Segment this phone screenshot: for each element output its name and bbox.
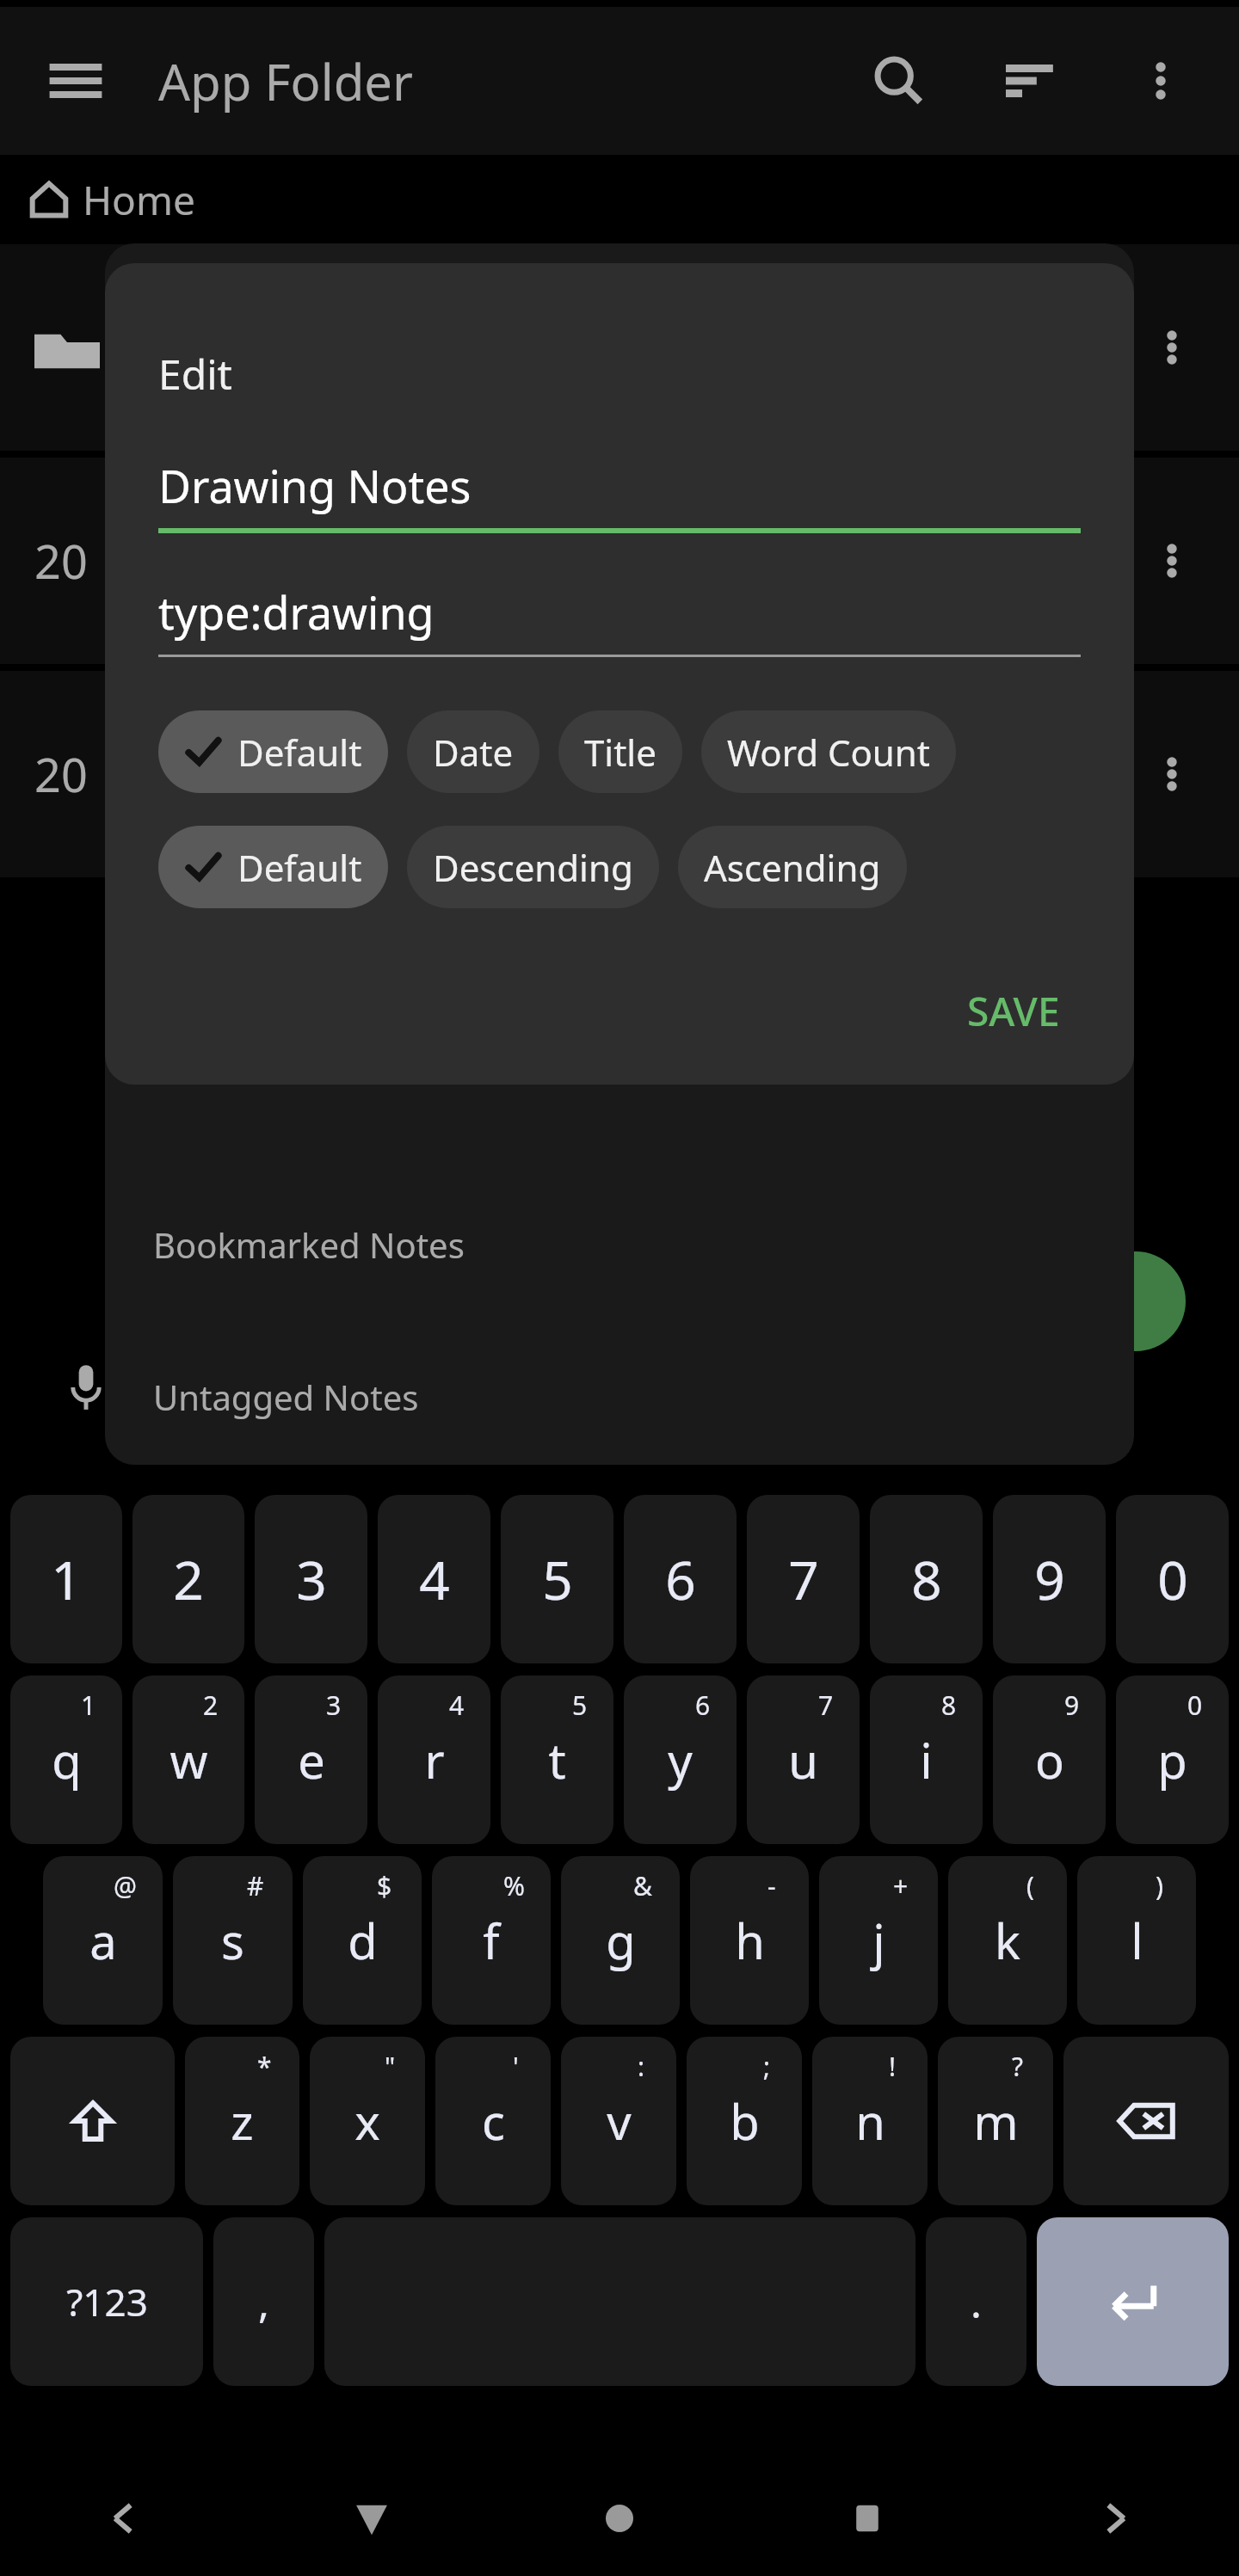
staticText: 0 bbox=[1157, 1543, 1188, 1615]
button[interactable]: Delete bbox=[1063, 2037, 1229, 2205]
button[interactable]: v bbox=[561, 2037, 676, 2205]
staticText: ? bbox=[1012, 2049, 1024, 2084]
staticText: o bbox=[1035, 1727, 1064, 1792]
staticText: * bbox=[257, 2049, 272, 2084]
button[interactable]: Ascending bbox=[678, 826, 907, 908]
staticText: % bbox=[503, 1868, 525, 1903]
button[interactable]: e bbox=[255, 1675, 367, 1844]
button[interactable]: 4 bbox=[378, 1495, 490, 1663]
button[interactable]: f bbox=[432, 1856, 551, 2025]
staticText: e bbox=[298, 1727, 325, 1792]
button[interactable]: Item options bbox=[1129, 304, 1215, 390]
staticText: ! bbox=[889, 2049, 897, 2084]
staticText: ) bbox=[1156, 1868, 1163, 1903]
button[interactable]: n bbox=[812, 2037, 928, 2205]
staticText: Word Count bbox=[727, 728, 930, 777]
button[interactable]: . bbox=[926, 2217, 1026, 2386]
button[interactable]: 9 bbox=[993, 1495, 1106, 1663]
button[interactable]: Search bbox=[852, 34, 946, 128]
staticText: : bbox=[638, 2049, 645, 2084]
button[interactable]: 20 bbox=[0, 458, 1239, 664]
button[interactable]: Add note bbox=[1086, 1251, 1186, 1351]
button[interactable]: Sort bbox=[983, 34, 1077, 128]
button[interactable]: Word Count bbox=[701, 710, 956, 793]
button[interactable]: Enter bbox=[1037, 2217, 1229, 2386]
staticText: ?123 bbox=[66, 2276, 148, 2327]
button[interactable]: Recent apps bbox=[743, 2460, 991, 2576]
staticText: Descending bbox=[433, 843, 633, 892]
staticText: 9 bbox=[1064, 1688, 1080, 1723]
button[interactable]: z bbox=[185, 2037, 299, 2205]
staticText: f bbox=[483, 1908, 500, 1973]
staticText: z bbox=[231, 2088, 254, 2154]
button[interactable]: g bbox=[561, 1856, 680, 2025]
button[interactable]: Item options bbox=[1129, 518, 1215, 604]
button[interactable]: y bbox=[624, 1675, 737, 1844]
staticText: 3 bbox=[296, 1543, 327, 1615]
button[interactable]: ?123 bbox=[10, 2217, 203, 2386]
button[interactable]: i bbox=[870, 1675, 983, 1844]
button[interactable]: Descending bbox=[407, 826, 659, 908]
button[interactable]: Previous bbox=[0, 2460, 248, 2576]
button[interactable]: 0 bbox=[1116, 1495, 1229, 1663]
button[interactable]: h bbox=[690, 1856, 809, 2025]
button[interactable]: b bbox=[687, 2037, 802, 2205]
button[interactable]: q bbox=[10, 1675, 122, 1844]
button[interactable]: p bbox=[1116, 1675, 1229, 1844]
button[interactable]: 7 bbox=[747, 1495, 860, 1663]
button[interactable]: o bbox=[993, 1675, 1106, 1844]
staticText: t bbox=[548, 1727, 566, 1792]
staticText: 5 bbox=[542, 1543, 573, 1615]
button[interactable]: Item options bbox=[0, 244, 1239, 451]
button[interactable]: Date bbox=[407, 710, 539, 793]
button[interactable]: Next bbox=[991, 2460, 1239, 2576]
button[interactable]: Default bbox=[158, 826, 388, 908]
button[interactable]: t bbox=[501, 1675, 613, 1844]
button[interactable]: w bbox=[133, 1675, 244, 1844]
staticText: y bbox=[668, 1727, 693, 1792]
staticText: 3 bbox=[326, 1688, 342, 1723]
button[interactable]: r bbox=[378, 1675, 490, 1844]
button[interactable]: 1 bbox=[10, 1495, 122, 1663]
staticText: 7 bbox=[818, 1688, 834, 1723]
staticText: l bbox=[1131, 1908, 1143, 1973]
button[interactable]: Hide keyboard bbox=[248, 2460, 496, 2576]
button[interactable]: m bbox=[938, 2037, 1053, 2205]
button[interactable]: Open navigation drawer bbox=[41, 46, 110, 115]
button[interactable]: Item options bbox=[1129, 731, 1215, 817]
staticText: n bbox=[855, 2088, 885, 2154]
staticText: + bbox=[893, 1868, 909, 1903]
button[interactable]: a bbox=[43, 1856, 163, 2025]
button[interactable]: More options bbox=[1113, 34, 1208, 128]
staticText: 1 bbox=[51, 1543, 82, 1615]
button[interactable]: j bbox=[819, 1856, 938, 2025]
staticText: g bbox=[606, 1908, 636, 1973]
button[interactable]: k bbox=[948, 1856, 1067, 2025]
button[interactable]: 6 bbox=[624, 1495, 737, 1663]
staticText: u bbox=[788, 1727, 818, 1792]
button[interactable]: , bbox=[213, 2217, 314, 2386]
button[interactable]: Title bbox=[558, 710, 682, 793]
staticText: Untagged Notes bbox=[153, 1374, 419, 1420]
button[interactable]: Default bbox=[158, 710, 388, 793]
staticText: & bbox=[633, 1868, 652, 1903]
button[interactable]: Voice search bbox=[53, 1355, 119, 1420]
button[interactable]: 20 bbox=[0, 671, 1239, 877]
button[interactable]: 2 bbox=[133, 1495, 244, 1663]
button[interactable]: c bbox=[435, 2037, 551, 2205]
button[interactable]: Home bbox=[496, 2460, 743, 2576]
staticText: type:drawing bbox=[158, 581, 435, 642]
button[interactable]: d bbox=[303, 1856, 422, 2025]
button[interactable]: 5 bbox=[501, 1495, 613, 1663]
button[interactable]: l bbox=[1077, 1856, 1196, 2025]
button[interactable]: s bbox=[173, 1856, 293, 2025]
button[interactable]: 8 bbox=[870, 1495, 983, 1663]
button[interactable]: x bbox=[310, 2037, 425, 2205]
staticText: 8 bbox=[911, 1543, 942, 1615]
button[interactable]: SAVE bbox=[946, 972, 1081, 1050]
staticText: k bbox=[995, 1908, 1020, 1973]
button[interactable]: Shift bbox=[10, 2037, 175, 2205]
button[interactable]: u bbox=[747, 1675, 860, 1844]
button[interactable]: 3 bbox=[255, 1495, 367, 1663]
